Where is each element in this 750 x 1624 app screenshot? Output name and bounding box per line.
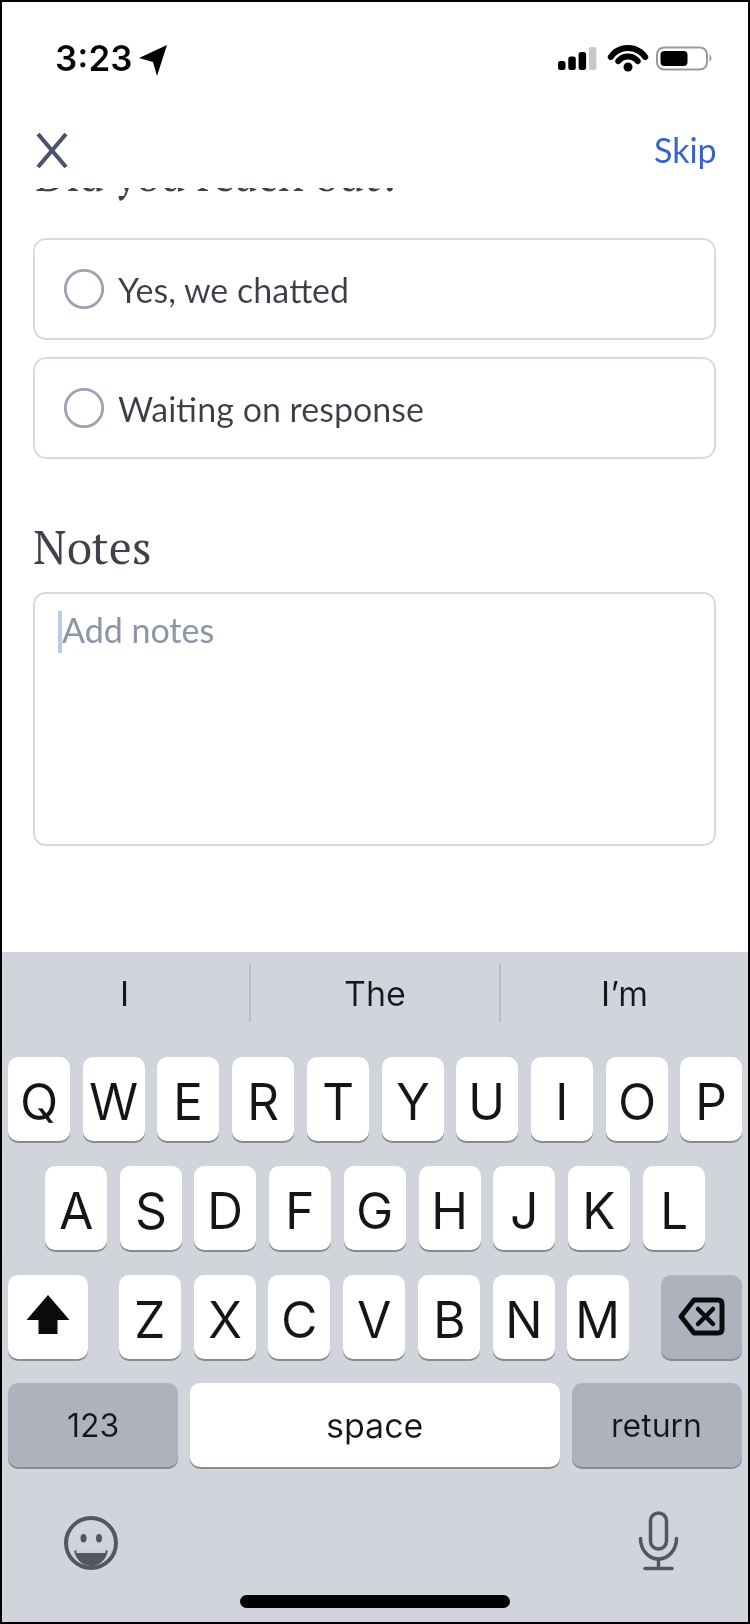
button[interactable]: Yes, we chatted xyxy=(33,238,716,340)
staticText: Skip xyxy=(654,129,717,170)
staticText: E xyxy=(173,1072,204,1132)
staticText: M xyxy=(575,1290,621,1350)
button[interactable]: K xyxy=(568,1166,630,1250)
staticText: O xyxy=(618,1072,657,1132)
button[interactable]: return xyxy=(572,1383,742,1467)
staticText: N xyxy=(505,1290,543,1350)
staticText: J xyxy=(510,1181,539,1241)
button[interactable]: Waiting on response xyxy=(33,357,716,459)
button[interactable]: A xyxy=(45,1166,107,1250)
staticText: I xyxy=(555,1072,569,1132)
button[interactable]: I xyxy=(531,1057,593,1141)
button[interactable]: E xyxy=(157,1057,219,1141)
staticText: The xyxy=(344,973,406,1014)
staticText: F xyxy=(285,1181,315,1241)
button[interactable]: N xyxy=(493,1275,555,1359)
staticText: K xyxy=(582,1181,616,1241)
button[interactable]: Q xyxy=(8,1057,70,1141)
button[interactable]: I’m xyxy=(500,952,750,1034)
staticText: 3:23 xyxy=(55,37,133,79)
staticText: Notes xyxy=(33,516,152,577)
button[interactable]: R xyxy=(232,1057,294,1141)
staticText: B xyxy=(433,1290,466,1350)
button[interactable]: S xyxy=(120,1166,182,1250)
button[interactable]: Skip xyxy=(640,122,730,177)
staticText: W xyxy=(89,1072,139,1132)
button[interactable]: 123 xyxy=(8,1383,178,1467)
button[interactable]: T xyxy=(307,1057,369,1141)
staticText: Did you reach out? xyxy=(35,145,402,203)
staticText: Add notes xyxy=(62,609,215,650)
button[interactable]: I xyxy=(0,952,250,1034)
staticText: C xyxy=(281,1290,318,1350)
staticText: L xyxy=(660,1181,689,1241)
button[interactable]: The xyxy=(250,952,500,1034)
staticText: V xyxy=(357,1290,392,1350)
staticText: 123 xyxy=(67,1406,120,1445)
staticText: Z xyxy=(134,1290,166,1350)
button[interactable]: B xyxy=(418,1275,480,1359)
staticText: X xyxy=(208,1290,243,1350)
staticText: G xyxy=(356,1181,394,1241)
staticText: P xyxy=(695,1072,727,1132)
button[interactable] xyxy=(28,124,76,176)
button[interactable] xyxy=(630,1505,688,1580)
staticText: space xyxy=(326,1405,424,1446)
button[interactable] xyxy=(8,1275,88,1359)
staticText: return xyxy=(611,1406,703,1445)
button[interactable]: Add notes xyxy=(33,592,716,846)
staticText: H xyxy=(431,1181,469,1241)
button[interactable]: O xyxy=(606,1057,668,1141)
staticText: I xyxy=(120,973,130,1014)
button[interactable]: W xyxy=(83,1057,145,1141)
staticText: S xyxy=(135,1181,168,1241)
staticText: D xyxy=(207,1181,244,1241)
staticText: Q xyxy=(20,1072,59,1132)
button[interactable]: G xyxy=(344,1166,406,1250)
staticText: R xyxy=(247,1072,280,1132)
staticText: Waiting on response xyxy=(118,388,424,429)
button[interactable]: L xyxy=(643,1166,705,1250)
button[interactable]: C xyxy=(268,1275,330,1359)
button[interactable]: space xyxy=(190,1383,560,1467)
button[interactable] xyxy=(661,1275,742,1359)
button[interactable]: J xyxy=(493,1166,555,1250)
button[interactable]: P xyxy=(680,1057,742,1141)
button[interactable]: X xyxy=(194,1275,256,1359)
button[interactable] xyxy=(58,1510,124,1576)
button[interactable]: Y xyxy=(382,1057,444,1141)
button[interactable]: D xyxy=(194,1166,256,1250)
staticText: Yes, we chatted xyxy=(118,269,350,310)
staticText: T xyxy=(322,1072,355,1132)
staticText: U xyxy=(468,1072,506,1132)
staticText: I’m xyxy=(601,973,649,1014)
button[interactable]: Z xyxy=(119,1275,181,1359)
button[interactable]: U xyxy=(456,1057,518,1141)
staticText: Y xyxy=(396,1072,430,1132)
button[interactable]: M xyxy=(567,1275,629,1359)
button[interactable]: H xyxy=(419,1166,481,1250)
button[interactable]: F xyxy=(269,1166,331,1250)
staticText: A xyxy=(59,1181,94,1241)
button[interactable]: V xyxy=(343,1275,405,1359)
